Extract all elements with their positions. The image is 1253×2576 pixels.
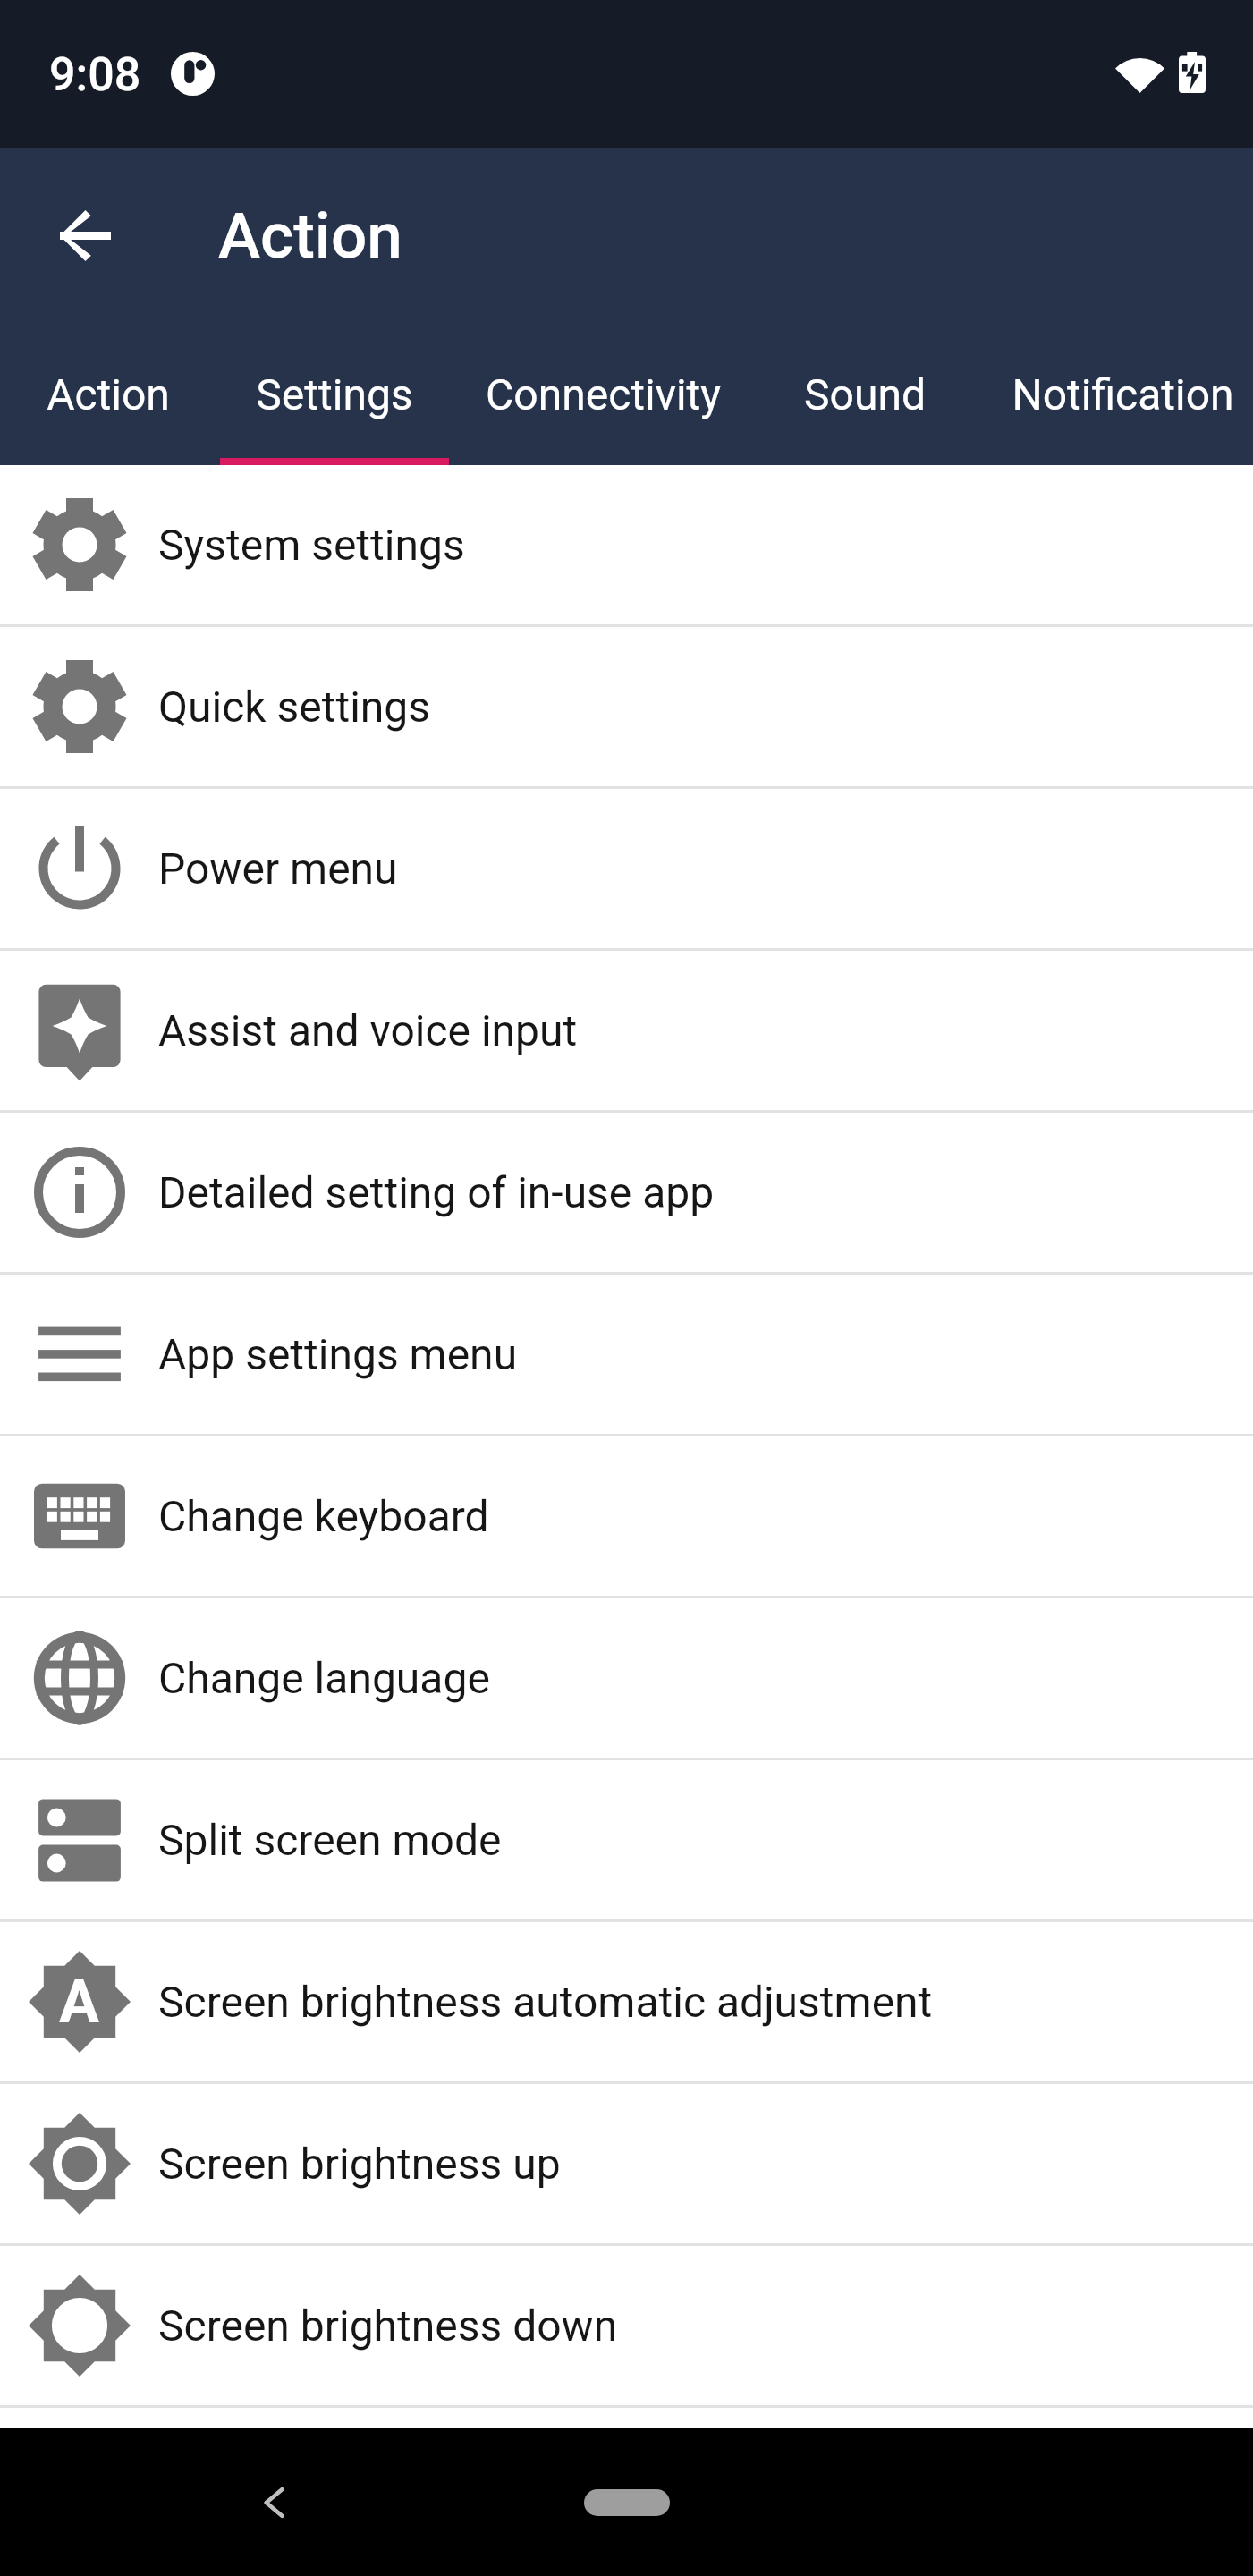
button[interactable]: Connectivity xyxy=(469,323,734,465)
staticText: Power menu xyxy=(158,843,398,894)
button[interactable]: Settings xyxy=(222,323,469,465)
button[interactable]: Assist and voice input xyxy=(0,951,1253,1110)
staticText: Screen brightness down xyxy=(158,2301,618,2351)
staticText: Connectivity xyxy=(486,369,721,419)
staticText: Split screen mode xyxy=(158,1815,502,1865)
staticText: Action xyxy=(218,199,402,273)
button[interactable]: Change language xyxy=(0,1598,1253,1758)
staticText: Action xyxy=(47,369,170,419)
button[interactable]: Change keyboard xyxy=(0,1436,1253,1596)
button[interactable]: Sound xyxy=(734,323,994,465)
staticText: Detailed setting of in-use app xyxy=(158,1167,715,1217)
button[interactable]: Navigate up xyxy=(33,183,138,288)
staticText: Change keyboard xyxy=(158,1491,489,1541)
staticText: Screen brightness automatic adjustment xyxy=(158,1977,933,2027)
staticText: 9:08 xyxy=(49,47,141,102)
staticText: Screen brightness up xyxy=(158,2139,561,2189)
staticText: Sound xyxy=(804,369,926,419)
button[interactable]: A xyxy=(0,1922,1253,2081)
button[interactable]: Home xyxy=(584,2489,670,2516)
button[interactable]: Detailed setting of in-use app xyxy=(0,1113,1253,1272)
button[interactable]: Quick settings xyxy=(0,627,1253,786)
button[interactable]: Action xyxy=(0,323,222,465)
staticText: Notification xyxy=(1012,369,1234,419)
staticText: App settings menu xyxy=(158,1329,518,1379)
button[interactable]: Power menu xyxy=(0,789,1253,948)
button[interactable]: System settings xyxy=(0,465,1253,624)
button[interactable]: Back xyxy=(234,2462,315,2543)
staticText: Quick settings xyxy=(158,682,431,732)
staticText: A xyxy=(59,1967,100,2038)
button[interactable]: Screen brightness down xyxy=(0,2246,1253,2405)
staticText: Assist and voice input xyxy=(158,1005,578,1055)
staticText: Settings xyxy=(256,369,413,419)
button[interactable]: Split screen mode xyxy=(0,1760,1253,1919)
staticText: Change language xyxy=(158,1653,490,1703)
button[interactable]: Notification xyxy=(994,323,1253,465)
staticText: System settings xyxy=(158,520,465,570)
button[interactable]: App settings menu xyxy=(0,1275,1253,1434)
button[interactable]: Screen brightness up xyxy=(0,2084,1253,2243)
